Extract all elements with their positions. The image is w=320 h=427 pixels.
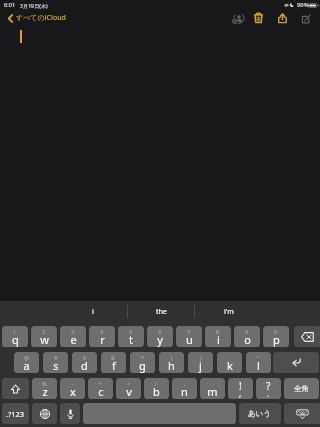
button[interactable]: % [32, 378, 57, 399]
button[interactable]: 3 [60, 326, 86, 347]
button[interactable]: ' [217, 352, 242, 373]
button[interactable]: ! [228, 378, 253, 399]
staticText: = [127, 380, 131, 387]
staticText: r [100, 332, 105, 347]
staticText: j [199, 358, 202, 373]
staticText: ' [229, 354, 231, 361]
button[interactable]: - [60, 378, 85, 399]
staticText: c [98, 384, 104, 399]
staticText: % [42, 380, 47, 387]
button[interactable]: ) [188, 352, 213, 373]
staticText: 4 [100, 328, 104, 335]
staticText: , [239, 388, 242, 399]
button[interactable]: Switch keyboard [32, 403, 57, 424]
staticText: b [153, 384, 160, 399]
staticText: $ [83, 354, 87, 361]
staticText: k [227, 358, 233, 373]
button[interactable]: New note [295, 10, 316, 29]
button[interactable]: : [200, 378, 225, 399]
button[interactable]: すべてのiCloud [8, 13, 66, 23]
button[interactable]: 1 [2, 326, 28, 347]
staticText: i [217, 332, 220, 347]
button[interactable]: ; [172, 378, 197, 399]
staticText: 0 [274, 328, 278, 335]
staticText: h [168, 358, 175, 373]
staticText: the [156, 307, 167, 317]
button[interactable]: 5 [118, 326, 144, 347]
staticText: 6 [158, 328, 162, 335]
button[interactable]: i [59, 303, 127, 320]
staticText: 全角 [294, 384, 309, 393]
staticText: u [186, 332, 193, 347]
button[interactable]: あいう [239, 403, 281, 424]
button[interactable]: " [246, 352, 271, 373]
staticText: 7 [187, 328, 191, 335]
staticText: .?123 [6, 409, 25, 419]
staticText: ) [200, 354, 202, 361]
button[interactable]: Shift [2, 378, 29, 399]
staticText: ; [184, 380, 186, 387]
button[interactable]: 0 [263, 326, 289, 347]
staticText: - [72, 380, 74, 387]
staticText: すべてのiCloud [16, 13, 66, 23]
button[interactable]: 8 [205, 326, 231, 347]
button[interactable]: Delete [249, 9, 268, 27]
staticText: 5 [129, 328, 133, 335]
staticText: v [126, 384, 132, 399]
button[interactable]: + [88, 378, 113, 399]
staticText: 3 [71, 328, 75, 335]
staticText: o [244, 332, 251, 347]
button[interactable]: Share [273, 9, 292, 27]
button[interactable]: 4 [89, 326, 115, 347]
button[interactable]: Return [273, 352, 319, 373]
staticText: i [92, 307, 94, 317]
staticText: 90% [297, 1, 309, 9]
button[interactable]: 9 [234, 326, 260, 347]
staticText: y [157, 332, 163, 347]
button[interactable]: the [127, 303, 195, 320]
button[interactable]: 2 [31, 326, 57, 347]
staticText: 6:01 [4, 1, 16, 9]
staticText: : [212, 380, 214, 387]
staticText: ! [239, 379, 242, 393]
staticText: ( [171, 354, 173, 361]
staticText: 2 [42, 328, 46, 335]
button[interactable]: / [144, 378, 169, 399]
staticText: * [141, 354, 145, 361]
button[interactable]: Add people [227, 9, 249, 28]
button[interactable]: @ [14, 352, 39, 373]
staticText: t [129, 332, 133, 347]
staticText: n [181, 384, 188, 399]
button[interactable]: 7 [176, 326, 202, 347]
button[interactable]: Backspace [294, 326, 320, 347]
staticText: あいう [248, 409, 272, 418]
button[interactable]: ? [256, 378, 281, 399]
staticText: 9 [245, 328, 249, 335]
staticText: # [54, 354, 58, 361]
button[interactable]: .?123 [2, 403, 29, 424]
button[interactable]: Dictation [60, 403, 80, 424]
staticText: f [112, 358, 116, 373]
staticText: g [139, 358, 146, 373]
button[interactable]: * [130, 352, 155, 373]
staticText: / [155, 380, 158, 387]
staticText: 8 [216, 328, 220, 335]
button[interactable]: # [43, 352, 68, 373]
staticText: a [23, 358, 30, 373]
staticText: ? [266, 379, 271, 393]
button[interactable]: $ [72, 352, 97, 373]
button[interactable]: ( [159, 352, 184, 373]
button[interactable]: 6 [147, 326, 173, 347]
button[interactable]: & [101, 352, 126, 373]
button[interactable]: = [116, 378, 141, 399]
staticText: 3月19日(木) [20, 2, 48, 9]
staticText: z [42, 384, 48, 399]
button[interactable]: i'm [195, 303, 263, 320]
staticText: . [267, 388, 270, 399]
staticText: x [70, 384, 76, 399]
staticText: d [81, 358, 88, 373]
staticText: e [70, 332, 77, 347]
button[interactable]: Hide keyboard [284, 403, 320, 424]
button[interactable]: 全角 [284, 378, 319, 399]
